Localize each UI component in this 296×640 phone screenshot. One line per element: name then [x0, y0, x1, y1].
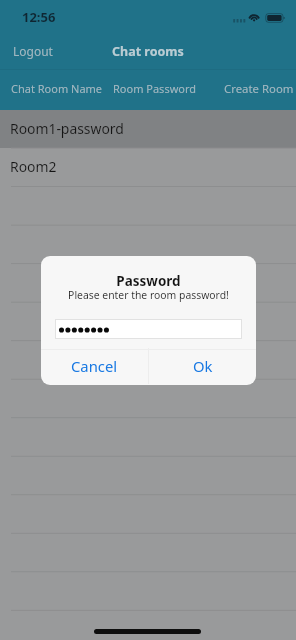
staticText: 12:56 [22, 8, 56, 26]
button[interactable]: Create Room [224, 81, 294, 97]
other: Status icons [230, 10, 290, 26]
staticText: Cancel [71, 356, 118, 376]
staticText: Ok [193, 356, 213, 376]
staticText: Chat rooms [112, 43, 184, 60]
staticText: Password [41, 272, 256, 290]
button[interactable]: Room1-password [0, 110, 296, 149]
staticText: Room1-password [10, 119, 124, 138]
button[interactable] [55, 319, 242, 339]
staticText: Create Room [224, 81, 294, 97]
staticText: Please enter the room password! [41, 288, 256, 302]
button[interactable]: Logout [13, 43, 53, 59]
button[interactable]: Chat Room Name [11, 81, 103, 96]
button[interactable]: Ok [149, 348, 256, 384]
staticText: Chat Room Name [11, 81, 103, 96]
staticText: Logout [13, 43, 53, 59]
button[interactable]: Cancel [41, 348, 148, 384]
staticText: Room Password [113, 81, 197, 96]
button[interactable]: Room Password [113, 81, 197, 96]
staticText: Room2 [10, 157, 57, 176]
button[interactable]: Room2 [0, 148, 296, 187]
